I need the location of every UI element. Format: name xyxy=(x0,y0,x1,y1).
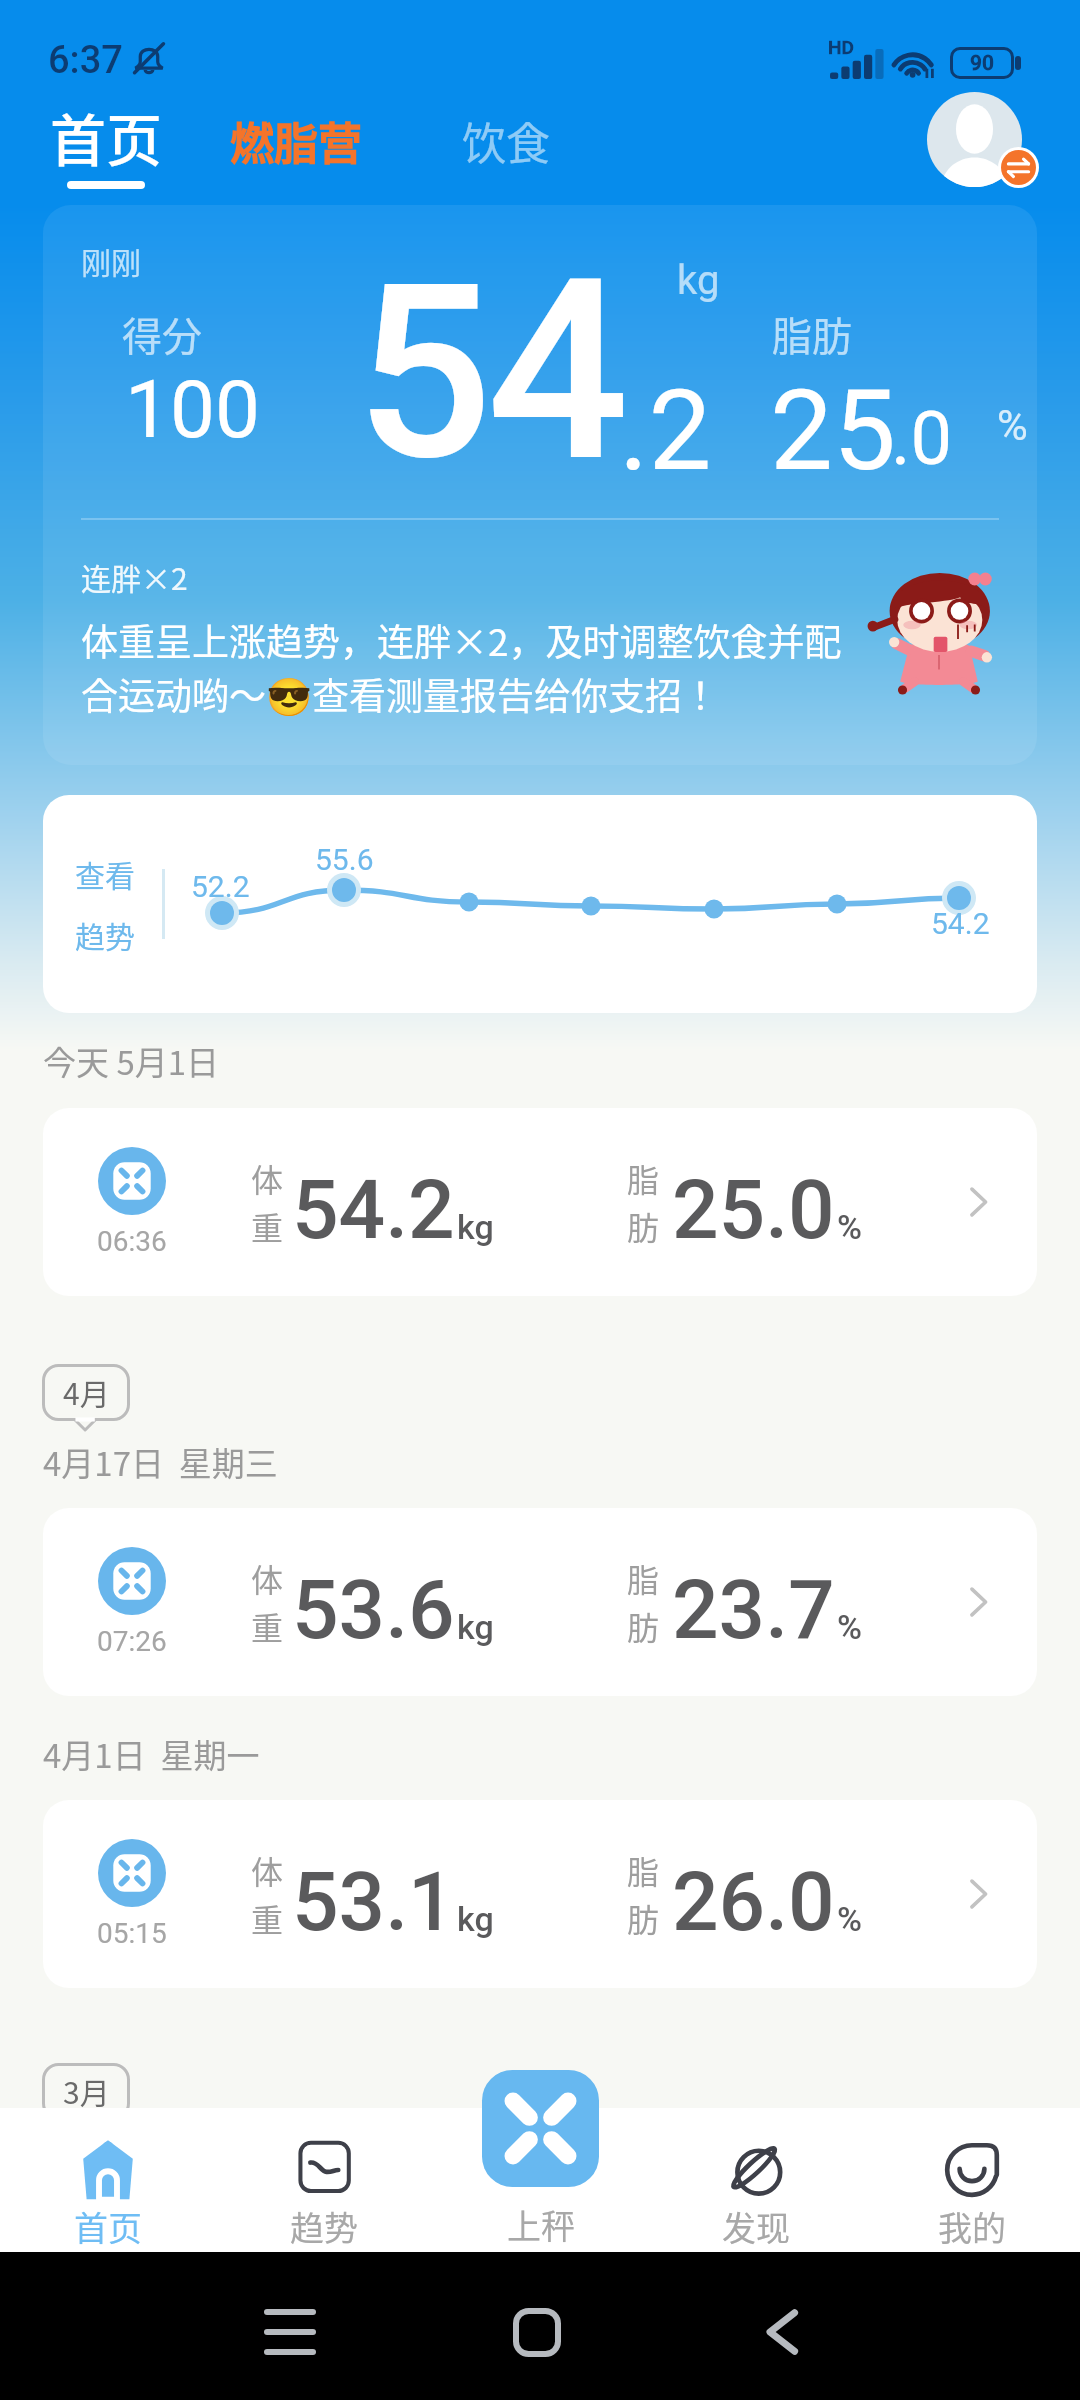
staticText: 5 xyxy=(355,231,493,505)
staticText: % xyxy=(997,401,1028,450)
button[interactable]: 06:36 xyxy=(43,1108,1037,1296)
button[interactable]: 发现 xyxy=(648,2108,864,2252)
staticText: 饮食 xyxy=(462,109,550,173)
staticText: kg xyxy=(457,1207,494,1247)
staticText: % xyxy=(837,1607,862,1647)
staticText: 53.1 xyxy=(292,1854,455,1950)
button[interactable]: 查看 xyxy=(43,795,1037,1013)
button[interactable]: 4月 xyxy=(42,1364,130,1430)
staticText: 52.2 xyxy=(191,869,250,904)
staticText: 首页 xyxy=(74,2202,142,2251)
staticText: 合运动哟～😎查看测量报告给你支招！ xyxy=(81,667,720,721)
button[interactable]: 首页 xyxy=(0,96,162,189)
staticText: kg xyxy=(457,1607,494,1647)
staticText: 发现 xyxy=(722,2202,790,2251)
staticText: 脂 xyxy=(627,1847,660,1893)
button[interactable]: 3月 xyxy=(42,2063,130,2129)
staticText: 55.6 xyxy=(315,842,374,877)
staticText: 4月17日 星期三 xyxy=(43,1438,278,1486)
staticText: 体重呈上涨趋势，连胖×2，及时调整饮食并配 xyxy=(81,613,842,667)
button[interactable]: 趋势 xyxy=(216,2108,432,2252)
button[interactable]: 07:26 xyxy=(43,1508,1037,1696)
staticText: 刚刚 xyxy=(81,239,141,282)
staticText: 3月 xyxy=(63,2069,110,2112)
button[interactable]: Recents xyxy=(244,2286,336,2378)
staticText: 25 xyxy=(770,365,896,496)
staticText: % xyxy=(837,1899,862,1939)
staticText: 90 xyxy=(970,51,994,76)
staticText: 上秤 xyxy=(507,2200,575,2249)
staticText: 26.0 xyxy=(672,1854,835,1950)
button[interactable]: 我的 xyxy=(864,2108,1080,2252)
button[interactable]: 上秤 xyxy=(482,2070,599,2252)
staticText: 连胖×2 xyxy=(81,555,188,598)
staticText: 燃脂营 xyxy=(230,109,362,173)
staticText: 肪 xyxy=(627,1895,660,1941)
staticText: 趋势 xyxy=(75,913,135,956)
button[interactable]: 首页 xyxy=(0,2108,216,2252)
staticText: 25.0 xyxy=(672,1162,835,1258)
staticText: 4 xyxy=(487,225,630,505)
staticText: 查看 xyxy=(75,852,135,895)
button[interactable]: 饮食 xyxy=(0,96,550,173)
staticText: 100 xyxy=(125,363,260,457)
staticText: 54.2 xyxy=(292,1162,455,1258)
staticText: 4月 xyxy=(63,1370,110,1413)
staticText: 4月1日 星期一 xyxy=(43,1730,260,1778)
staticText: 重 xyxy=(251,1203,284,1249)
staticText: 06:36 xyxy=(97,1225,167,1258)
staticText: 53.6 xyxy=(292,1562,455,1658)
staticText: 得分 xyxy=(122,305,202,363)
staticText: .0 xyxy=(891,395,953,482)
staticText: 肪 xyxy=(627,1203,660,1249)
staticText: 首页 xyxy=(50,96,162,177)
staticText: kg xyxy=(677,257,720,304)
staticText: 05:15 xyxy=(97,1917,167,1950)
staticText: 体 xyxy=(251,1555,284,1601)
staticText: 54.2 xyxy=(931,906,990,941)
staticText: kg xyxy=(457,1899,494,1939)
button[interactable]: Profile xyxy=(927,92,1039,201)
staticText: 脂 xyxy=(627,1555,660,1601)
staticText: 6:37 xyxy=(48,38,123,83)
button[interactable]: 05:15 xyxy=(43,1800,1037,1988)
staticText: 肪 xyxy=(627,1603,660,1649)
staticText: 23.7 xyxy=(672,1562,835,1658)
button[interactable]: 燃脂营 xyxy=(0,96,362,173)
staticText: 重 xyxy=(251,1895,284,1941)
staticText: 重 xyxy=(251,1603,284,1649)
staticText: 脂 xyxy=(627,1155,660,1201)
staticText: % xyxy=(837,1207,862,1247)
staticText: 07:26 xyxy=(97,1625,167,1658)
staticText: HD xyxy=(828,36,854,58)
button[interactable]: Back xyxy=(736,2286,828,2378)
staticText: 体 xyxy=(251,1155,284,1201)
staticText: 我的 xyxy=(938,2202,1006,2251)
staticText: 趋势 xyxy=(290,2202,358,2251)
staticText: .2 xyxy=(619,365,712,496)
button[interactable]: Home xyxy=(491,2286,583,2378)
staticText: 今天 5月1日 xyxy=(43,1037,220,1085)
button[interactable]: 刚刚 xyxy=(43,205,1037,765)
staticText: 体 xyxy=(251,1847,284,1893)
staticText: 脂肪 xyxy=(772,305,852,363)
